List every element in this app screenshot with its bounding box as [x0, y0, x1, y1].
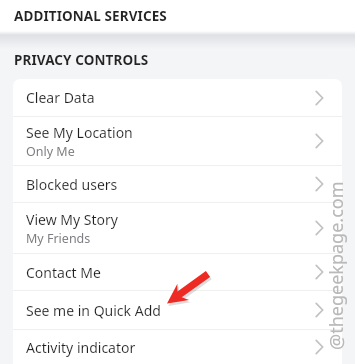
staticText: My Friends: [26, 230, 91, 247]
button[interactable]: Activity indicator: [13, 330, 342, 364]
staticText: See My Location: [26, 123, 133, 142]
button[interactable]: See me in Quick Add: [13, 291, 342, 329]
staticText: Contact Me: [26, 263, 101, 282]
staticText: ADDITIONAL SERVICES: [14, 7, 167, 25]
button[interactable]: See My Location: [13, 117, 342, 165]
staticText: Activity indicator: [26, 338, 136, 357]
button[interactable]: Clear Data: [13, 79, 342, 116]
staticText: Blocked users: [26, 175, 118, 194]
button[interactable]: View My Story: [13, 203, 342, 253]
staticText: View My Story: [26, 210, 118, 229]
button[interactable]: Blocked users: [13, 166, 342, 202]
staticText: Only Me: [26, 143, 75, 160]
button[interactable]: Contact Me: [13, 254, 342, 290]
staticText: @thegeekpage.com: [324, 181, 349, 350]
staticText: Clear Data: [26, 88, 95, 107]
staticText: See me in Quick Add: [26, 301, 161, 320]
staticText: PRIVACY CONTROLS: [14, 51, 149, 69]
